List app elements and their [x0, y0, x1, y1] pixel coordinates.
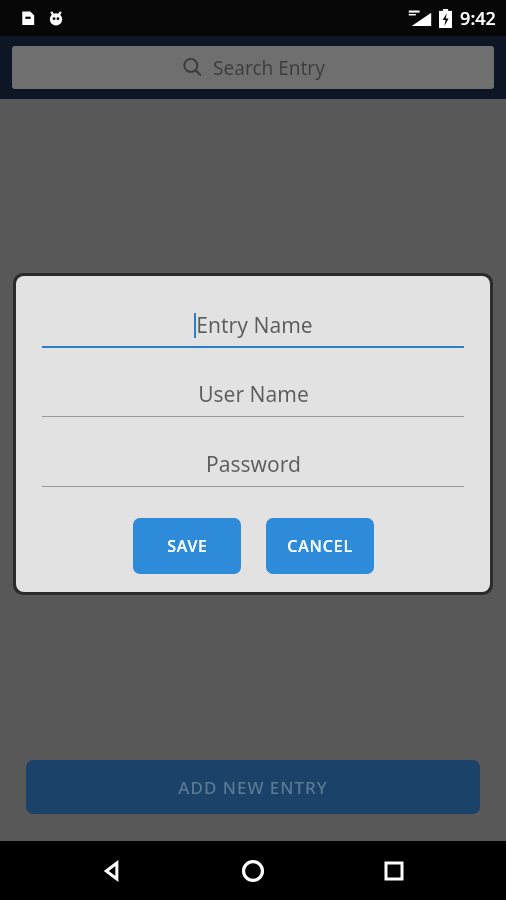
- staticText: 9:42: [460, 6, 496, 31]
- button[interactable]: Recent apps: [364, 841, 424, 900]
- button[interactable]: User Name: [16, 371, 490, 417]
- button[interactable]: Password: [16, 441, 490, 487]
- button[interactable]: Back: [82, 841, 142, 900]
- button[interactable]: Search Entry: [12, 46, 494, 89]
- staticText: Search Entry: [213, 55, 325, 81]
- staticText: Entry Name: [196, 311, 313, 340]
- staticText: SAVE: [167, 535, 208, 557]
- button[interactable]: CANCEL: [266, 518, 374, 574]
- button[interactable]: Home: [223, 841, 283, 900]
- staticText: User Name: [198, 380, 309, 409]
- staticText: Password: [206, 450, 301, 479]
- button[interactable]: ADD NEW ENTRY: [26, 760, 480, 814]
- staticText: CANCEL: [287, 535, 353, 557]
- button[interactable]: Entry Name: [16, 302, 490, 348]
- staticText: ADD NEW ENTRY: [178, 776, 328, 799]
- button[interactable]: SAVE: [133, 518, 241, 574]
